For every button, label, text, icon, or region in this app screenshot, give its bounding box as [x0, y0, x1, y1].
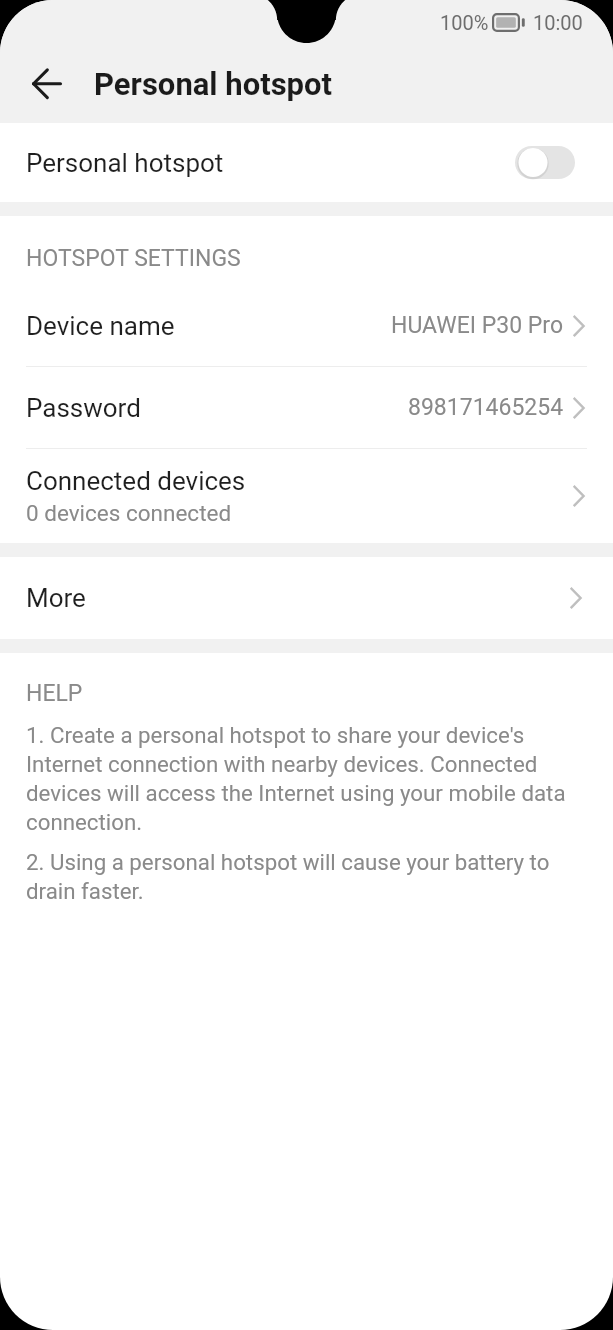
staticText: 2. Using a personal hotspot will cause y…: [26, 847, 587, 905]
button[interactable]: Personal hotspot toggle: [515, 146, 575, 179]
button[interactable]: Password: [0, 367, 613, 448]
button[interactable]: More: [0, 557, 613, 639]
staticText: Personal hotspot: [26, 148, 224, 178]
staticText: 898171465254: [408, 394, 564, 421]
staticText: Password: [26, 393, 141, 423]
staticText: 0 devices connected: [26, 500, 232, 526]
staticText: 100%: [440, 11, 489, 34]
staticText: Device name: [26, 311, 175, 341]
staticText: HOTSPOT SETTINGS: [26, 245, 241, 272]
button[interactable]: Device name: [0, 285, 613, 366]
staticText: HUAWEI P30 Pro: [391, 312, 564, 339]
staticText: More: [26, 583, 86, 613]
staticText: Personal hotspot: [94, 66, 333, 102]
staticText: 1. Create a personal hotspot to share yo…: [26, 720, 587, 836]
staticText: HELP: [26, 680, 83, 707]
staticText: 10:00: [533, 11, 583, 34]
staticText: Connected devices: [26, 466, 246, 496]
button[interactable]: Personal hotspot: [0, 123, 613, 202]
button[interactable]: Connected devices: [0, 449, 613, 543]
button[interactable]: Back: [17, 54, 77, 114]
